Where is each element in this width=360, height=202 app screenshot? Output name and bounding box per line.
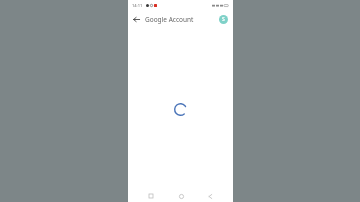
button[interactable]: Back — [204, 190, 216, 202]
button[interactable]: Home — [175, 190, 187, 202]
staticText: S — [222, 16, 225, 23]
staticText: Google Account — [145, 15, 218, 24]
button[interactable]: Google Account profile — [218, 14, 229, 25]
button[interactable]: Back — [130, 13, 143, 26]
button[interactable]: Recent apps — [145, 190, 157, 202]
staticText: 14:11 — [132, 3, 143, 8]
